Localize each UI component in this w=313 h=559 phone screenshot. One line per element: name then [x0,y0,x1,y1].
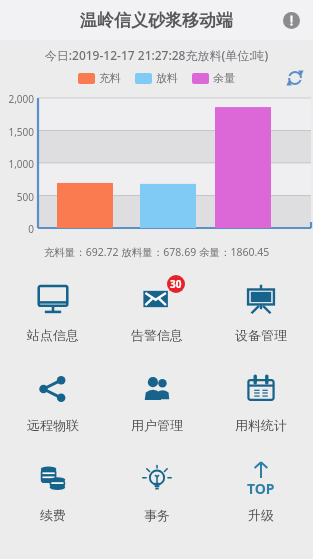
staticText: TOP [247,479,275,498]
staticText: 0 [0,222,34,236]
staticText: 今日:2019-12-17 21:27:28充放料(单位:吨) [0,47,313,63]
staticText: 2,000 [0,92,34,106]
staticText: 用料统计 [235,417,287,433]
staticText: 500 [0,190,34,204]
button[interactable]: 设备管理 [209,265,313,355]
staticText: 30 [170,277,182,291]
staticText: 站点信息 [27,327,79,343]
staticText: 充料量：692.72 放料量：678.69 余量：1860.45 [0,245,313,259]
staticText: 事务 [144,507,170,523]
button[interactable]: 用户管理 [105,355,209,445]
button[interactable]: 续费 [0,445,105,535]
button[interactable]: 30 [105,265,209,355]
button[interactable]: TOP [209,445,313,535]
button[interactable]: 用料统计 [209,355,313,445]
staticText: 用户管理 [131,417,183,433]
button[interactable]: 远程物联 [0,355,105,445]
button[interactable]: Refresh [283,68,307,88]
staticText: 升级 [248,507,274,523]
staticText: 告警信息 [131,327,183,343]
button[interactable]: 事务 [105,445,209,535]
staticText: 余量 [213,71,235,85]
staticText: 1,500 [0,125,34,139]
button[interactable]: Information [277,6,305,34]
staticText: 远程物联 [27,417,79,433]
staticText: 设备管理 [235,327,287,343]
staticText: 放料 [156,71,178,85]
staticText: 续费 [40,507,66,523]
staticText: 1,000 [0,157,34,171]
button[interactable]: 站点信息 [0,265,105,355]
staticText: 温岭信义砂浆移动端 [80,10,233,31]
staticText: 充料 [99,71,121,85]
